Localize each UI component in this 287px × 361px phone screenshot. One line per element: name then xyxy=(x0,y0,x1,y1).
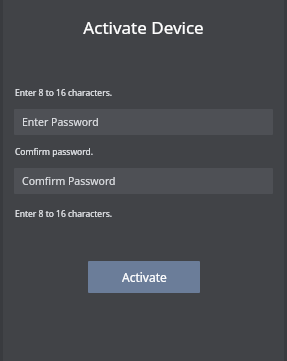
button[interactable]: Activate xyxy=(88,261,200,293)
staticText: Enter 8 to 16 characters. xyxy=(15,87,113,99)
staticText: Enter Password xyxy=(22,115,99,129)
staticText: Comfirm Password xyxy=(22,174,116,188)
staticText: Enter 8 to 16 characters. xyxy=(15,208,113,220)
staticText: Comfirm password. xyxy=(15,146,94,158)
button[interactable]: Enter Password xyxy=(14,109,273,135)
staticText: Activate xyxy=(122,269,167,285)
staticText: Activate Device xyxy=(83,16,204,39)
button[interactable]: Comfirm Password xyxy=(14,168,273,194)
